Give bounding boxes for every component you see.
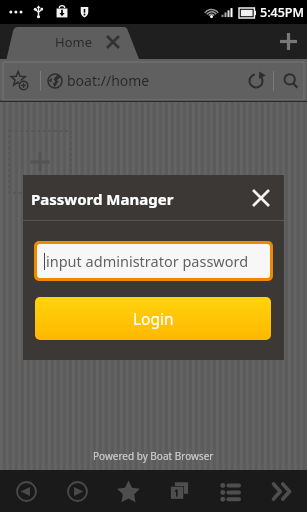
button[interactable]: Login [35, 297, 271, 340]
button[interactable]: Bookmarks [103, 470, 154, 512]
staticText: input administrator password [46, 251, 249, 271]
staticText: Powered by Boat Browser [93, 449, 214, 463]
staticText: 5:45PM [260, 4, 304, 21]
button[interactable]: Add bookmark [0, 59, 40, 102]
button[interactable]: Search [274, 59, 307, 102]
button[interactable]: Back [0, 470, 52, 512]
button[interactable]: Reload [239, 59, 273, 102]
button[interactable]: New tab [269, 24, 307, 59]
staticText: boat://home [67, 71, 150, 90]
button[interactable]: Home [10, 27, 130, 59]
button[interactable]: Menu [205, 470, 256, 512]
staticText: Login [133, 308, 174, 329]
button[interactable]: Forward [52, 470, 103, 512]
button[interactable]: More [256, 470, 307, 512]
staticText: Password Manager [31, 189, 174, 209]
button[interactable]: input administrator password [37, 244, 270, 278]
button[interactable]: Close tab [100, 24, 126, 59]
button[interactable]: Close [238, 175, 284, 220]
button[interactable]: Tabs [154, 470, 205, 512]
staticText: Home [55, 33, 92, 51]
